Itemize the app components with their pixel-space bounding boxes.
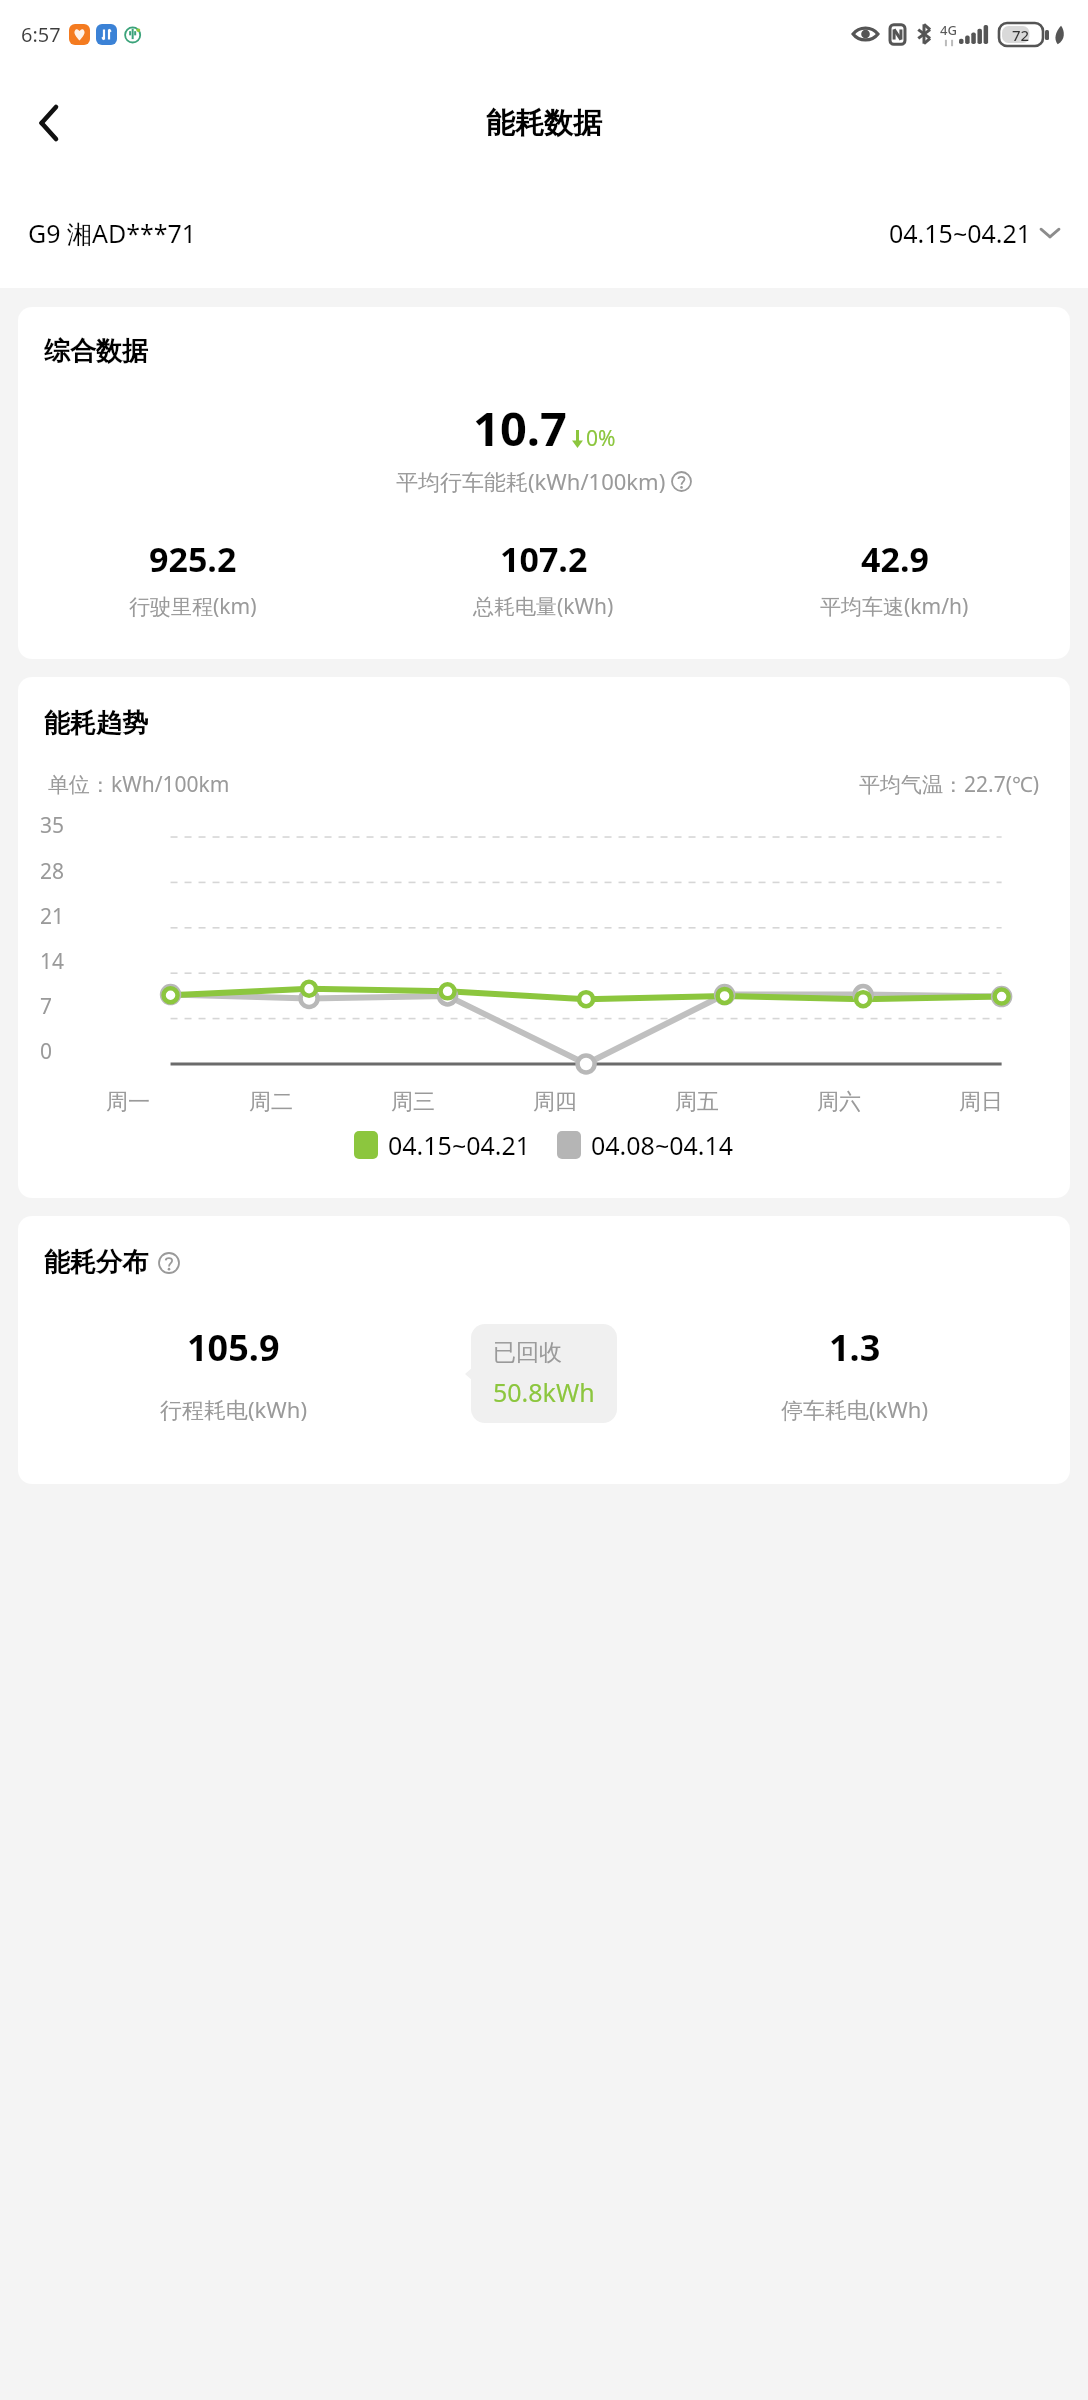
staticText: 能耗分布 <box>44 1246 148 1279</box>
staticText: 周二 <box>249 1088 293 1116</box>
staticText: 周五 <box>675 1088 719 1116</box>
staticText: 平均车速(km/h) <box>820 592 969 621</box>
button[interactable]: 04.15~04.21 <box>889 216 1060 250</box>
staticText: 周四 <box>533 1088 577 1116</box>
button[interactable]: 能耗分布 <box>18 1216 1070 1484</box>
staticText: 总耗电量(kWh) <box>473 592 614 621</box>
staticText: 105.9 <box>187 1323 280 1372</box>
staticText: 10.7 <box>473 396 567 460</box>
staticText: 周日 <box>959 1088 1003 1116</box>
button[interactable]: Back <box>20 94 78 152</box>
staticText: 停车耗电(kWh) <box>781 1394 929 1424</box>
staticText: G9 湘AD***71 <box>28 216 197 250</box>
staticText: 04.08~04.14 <box>591 1128 734 1162</box>
staticText: 0% <box>586 424 616 453</box>
staticText: 综合数据 <box>44 335 148 368</box>
staticText: 1.3 <box>829 1323 881 1372</box>
staticText: 21 <box>40 902 65 931</box>
staticText: 周一 <box>106 1088 150 1116</box>
staticText: 行程耗电(kWh) <box>160 1394 308 1424</box>
staticText: 6:57 <box>21 21 61 48</box>
staticText: 28 <box>40 857 65 886</box>
staticText: 72 <box>1012 25 1030 45</box>
staticText: 7 <box>40 992 53 1021</box>
staticText: 925.2 <box>149 536 237 582</box>
staticText: 单位：kWh/100km <box>48 770 230 799</box>
staticText: 能耗数据 <box>486 105 602 142</box>
staticText: 能耗趋势 <box>44 707 148 740</box>
staticText: 周三 <box>391 1088 435 1116</box>
staticText: 35 <box>40 811 65 840</box>
staticText: 42.9 <box>861 536 929 582</box>
staticText: 已回收 <box>493 1338 562 1367</box>
staticText: 周六 <box>817 1088 861 1116</box>
staticText: 平均气温：22.7(℃) <box>859 770 1040 799</box>
button[interactable]: 能耗趋势 <box>18 677 1070 1198</box>
staticText: 14 <box>40 947 65 976</box>
staticText: 行驶里程(km) <box>129 592 257 621</box>
staticText: 04.15~04.21 <box>889 216 1032 250</box>
staticText: 107.2 <box>500 536 588 582</box>
staticText: 平均行车能耗(kWh/100km) <box>396 466 666 496</box>
staticText: 0 <box>40 1037 53 1066</box>
staticText: 50.8kWh <box>493 1375 595 1409</box>
staticText: 04.15~04.21 <box>388 1128 531 1162</box>
staticText: 4G <box>940 21 957 39</box>
button[interactable]: 综合数据 <box>18 307 1070 659</box>
